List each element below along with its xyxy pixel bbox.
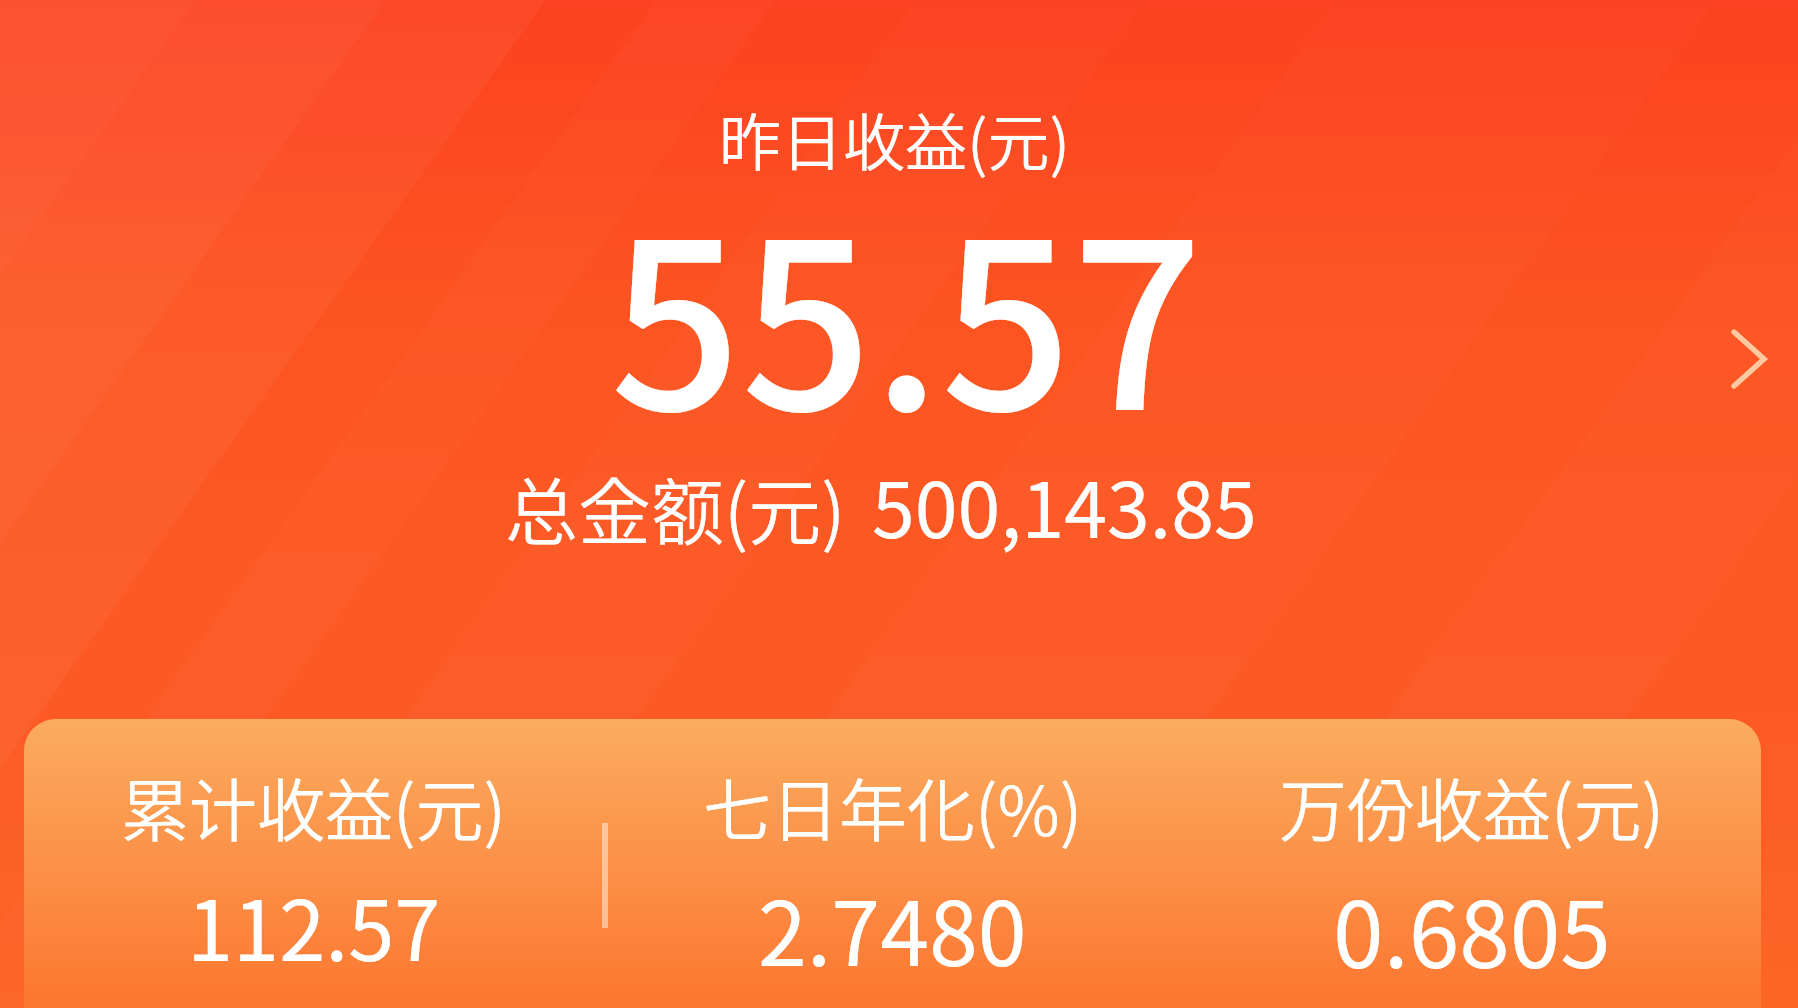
staticText: 总金额(元) bbox=[505, 454, 846, 560]
button[interactable]: 万份收益(元) bbox=[1182, 719, 1761, 1008]
button[interactable]: 七日年化(%) bbox=[603, 719, 1182, 1008]
staticText: 昨日收益(元) bbox=[719, 94, 1071, 184]
staticText: 0.6805 bbox=[1333, 862, 1611, 994]
staticText: 2.7480 bbox=[758, 864, 1027, 991]
staticText: 累计收益(元) bbox=[121, 757, 507, 855]
button[interactable]: 累计收益(元) bbox=[24, 719, 603, 1008]
button[interactable] bbox=[0, 0, 1798, 700]
staticText: 万份收益(元) bbox=[1279, 757, 1665, 855]
button[interactable]: View details bbox=[1689, 299, 1798, 419]
staticText: 500,143.85 bbox=[872, 449, 1257, 560]
staticText: 七日年化(%) bbox=[703, 757, 1083, 855]
staticText: 112.57 bbox=[187, 865, 441, 985]
staticText: 55.57 bbox=[610, 143, 1203, 476]
